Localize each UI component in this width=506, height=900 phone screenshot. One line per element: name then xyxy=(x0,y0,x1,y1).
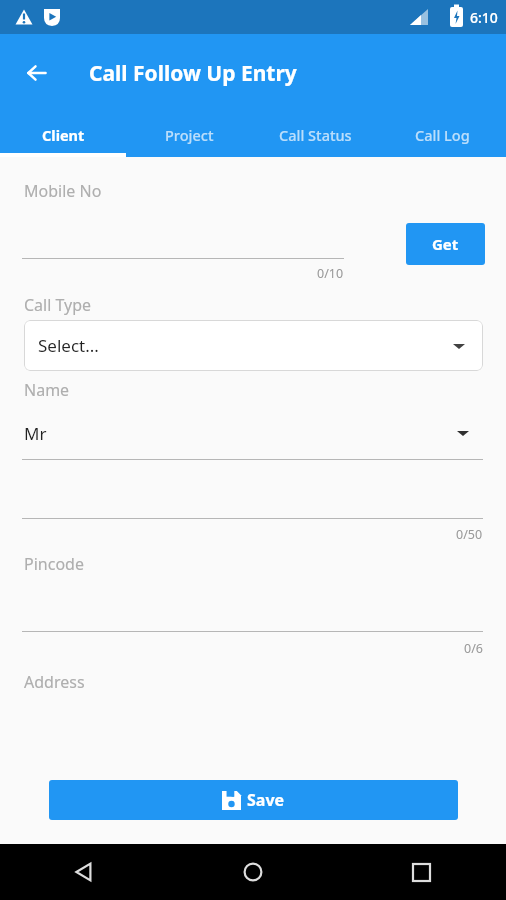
button[interactable]: Call Log xyxy=(379,112,506,157)
staticText: Get xyxy=(432,234,459,254)
staticText: 0/6 xyxy=(464,640,483,657)
staticText: Call Follow Up Entry xyxy=(89,59,297,88)
staticText: Select... xyxy=(38,334,99,357)
button[interactable] xyxy=(22,217,344,259)
staticText: Call Log xyxy=(415,125,470,145)
button[interactable]: Project xyxy=(126,112,252,157)
button[interactable]: Call Status xyxy=(252,112,379,157)
button[interactable]: Get xyxy=(406,223,485,265)
button[interactable]: Mr xyxy=(22,407,483,459)
staticText: Mobile No xyxy=(24,180,102,202)
staticText: Client xyxy=(42,125,85,145)
button[interactable]: Back xyxy=(14,50,60,96)
staticText: 6:10 xyxy=(470,8,498,27)
button[interactable]: Back xyxy=(0,844,168,900)
staticText: 0/50 xyxy=(456,526,483,543)
staticText: Mr xyxy=(24,422,47,445)
button[interactable]: Client xyxy=(0,112,126,157)
staticText: Address xyxy=(24,671,85,693)
staticText: Call Type xyxy=(24,294,92,316)
staticText: 0/10 xyxy=(317,265,344,282)
staticText: Call Status xyxy=(279,125,352,145)
staticText: Project xyxy=(165,125,214,145)
button[interactable]: Recents xyxy=(337,844,506,900)
staticText: Save xyxy=(247,789,285,811)
staticText: Pincode xyxy=(24,553,84,575)
button[interactable]: Save xyxy=(49,780,458,820)
staticText: Name xyxy=(24,379,70,401)
button[interactable]: Select... xyxy=(24,320,483,371)
button[interactable]: Home xyxy=(168,844,337,900)
